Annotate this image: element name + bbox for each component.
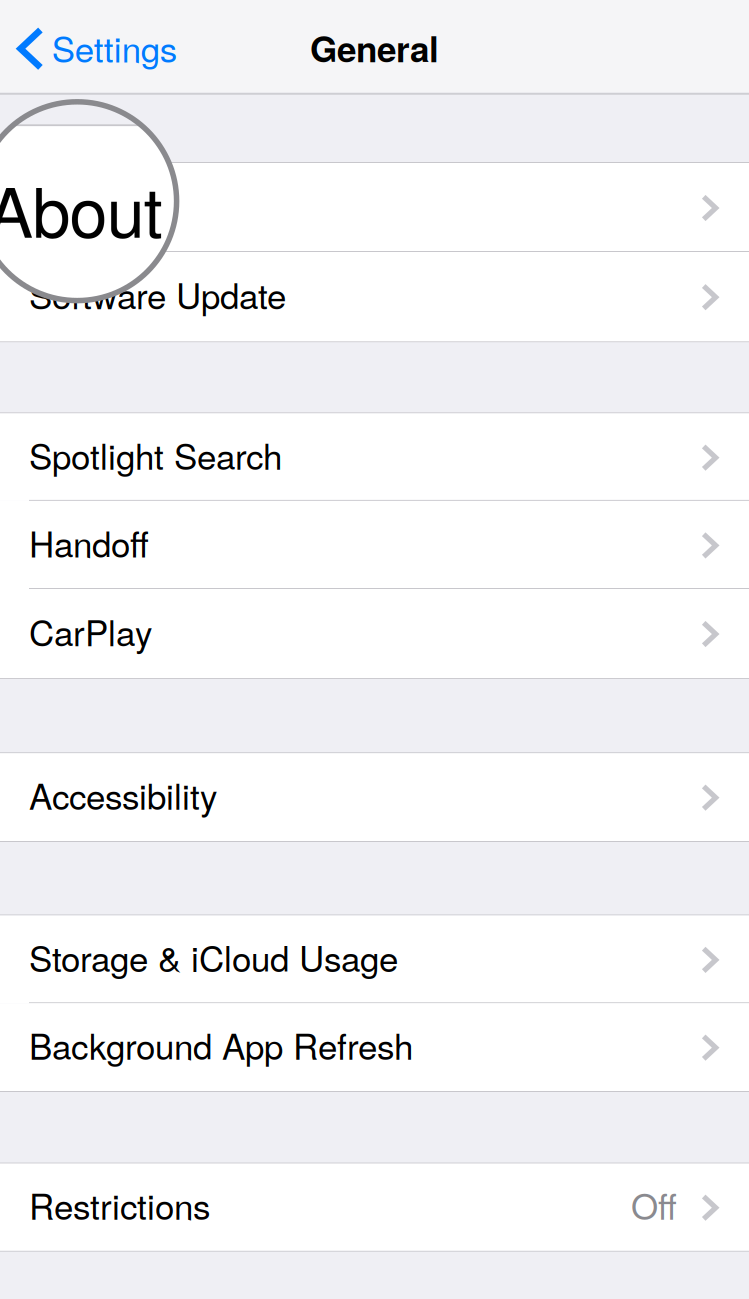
button[interactable]: Background App Refresh [0, 811, 680, 899]
staticText: Accessibility [29, 770, 217, 820]
staticText: CarPlay [29, 606, 152, 656]
staticText: Storage & iCloud Usage [29, 932, 398, 982]
button[interactable]: Software Update [0, 252, 749, 341]
button[interactable]: Restrictions [0, 972, 680, 1059]
button[interactable]: Storage & iCloud Usage [0, 915, 749, 1003]
staticText: Background App Refresh [0, 828, 344, 878]
button[interactable]: Background App Refresh [0, 1003, 749, 1091]
button[interactable]: Spotlight Search [0, 413, 749, 501]
button[interactable]: About [0, 163, 749, 252]
staticText: General [310, 23, 439, 73]
button[interactable]: Spotlight Search [0, 221, 680, 309]
button[interactable]: Accessibility [0, 561, 680, 649]
button[interactable]: CarPlay [0, 397, 680, 486]
staticText: Off [631, 1180, 677, 1230]
button[interactable]: Handoff [0, 309, 680, 397]
staticText: Handoff [29, 517, 149, 567]
staticText: Restrictions [29, 1180, 210, 1230]
staticText: About [0, 0, 50, 38]
staticText: Software Update [29, 269, 286, 319]
staticText: Storage & iCloud Usage [0, 740, 329, 790]
button[interactable]: Accessibility [0, 753, 749, 841]
button[interactable]: Storage & iCloud Usage [0, 723, 680, 811]
staticText: Spotlight Search [29, 430, 282, 480]
staticText: Settings [52, 22, 177, 72]
staticText: Accessibility [0, 578, 148, 628]
button[interactable]: CarPlay [0, 589, 749, 678]
button[interactable]: About [0, 0, 680, 60]
button[interactable]: Software Update [0, 60, 680, 149]
staticText: Handoff [0, 325, 80, 375]
staticText: CarPlay [0, 414, 83, 464]
staticText: About [29, 180, 119, 230]
staticText: Spotlight Search [0, 238, 213, 288]
button[interactable]: Handoff [0, 501, 749, 589]
staticText: Background App Refresh [29, 1020, 413, 1070]
staticText: Off [562, 988, 608, 1038]
button[interactable]: Settings [0, 0, 189, 93]
staticText: Software Update [0, 77, 217, 127]
button[interactable]: Restrictions [0, 1164, 749, 1251]
staticText: Restrictions [0, 988, 141, 1038]
